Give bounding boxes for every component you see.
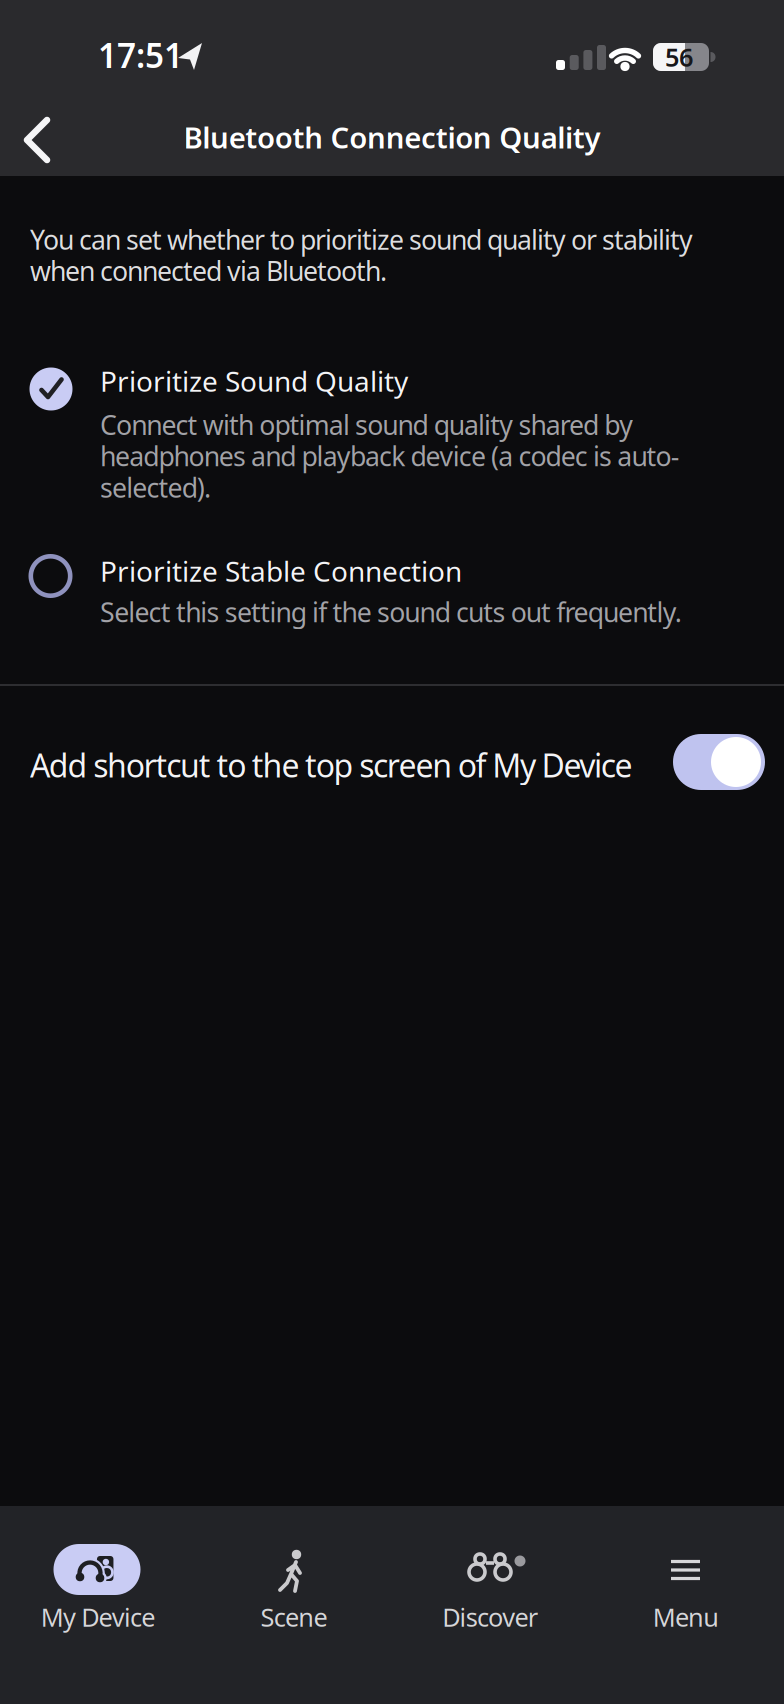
- staticText: Connect with optimal sound quality share…: [100, 407, 680, 505]
- staticText: Prioritize Sound Quality: [100, 362, 408, 400]
- button[interactable]: Prioritize Stable Connection: [0, 530, 784, 660]
- staticText: You can set whether to prioritize sound …: [30, 222, 693, 288]
- button[interactable]: Add shortcut to the top screen of My Dev…: [673, 734, 765, 790]
- button[interactable]: Prioritize Sound Quality: [0, 325, 784, 505]
- button[interactable]: Back: [5, 108, 69, 172]
- staticText: 17:51: [98, 33, 183, 77]
- staticText: Prioritize Stable Connection: [100, 552, 462, 590]
- staticText: Menu: [653, 1600, 719, 1634]
- staticText: Scene: [261, 1600, 327, 1634]
- staticText: Bluetooth Connection Quality: [183, 117, 600, 156]
- button[interactable]: Menu: [588, 1506, 784, 1704]
- staticText: Select this setting if the sound cuts ou…: [100, 594, 682, 630]
- button[interactable]: My Device: [0, 1506, 196, 1704]
- button[interactable]: Scene: [196, 1506, 392, 1704]
- button[interactable]: Discover: [392, 1506, 588, 1704]
- staticText: 56: [665, 40, 693, 74]
- staticText: My Device: [41, 1600, 155, 1634]
- staticText: Add shortcut to the top screen of My Dev…: [30, 744, 633, 786]
- staticText: Discover: [442, 1600, 538, 1634]
